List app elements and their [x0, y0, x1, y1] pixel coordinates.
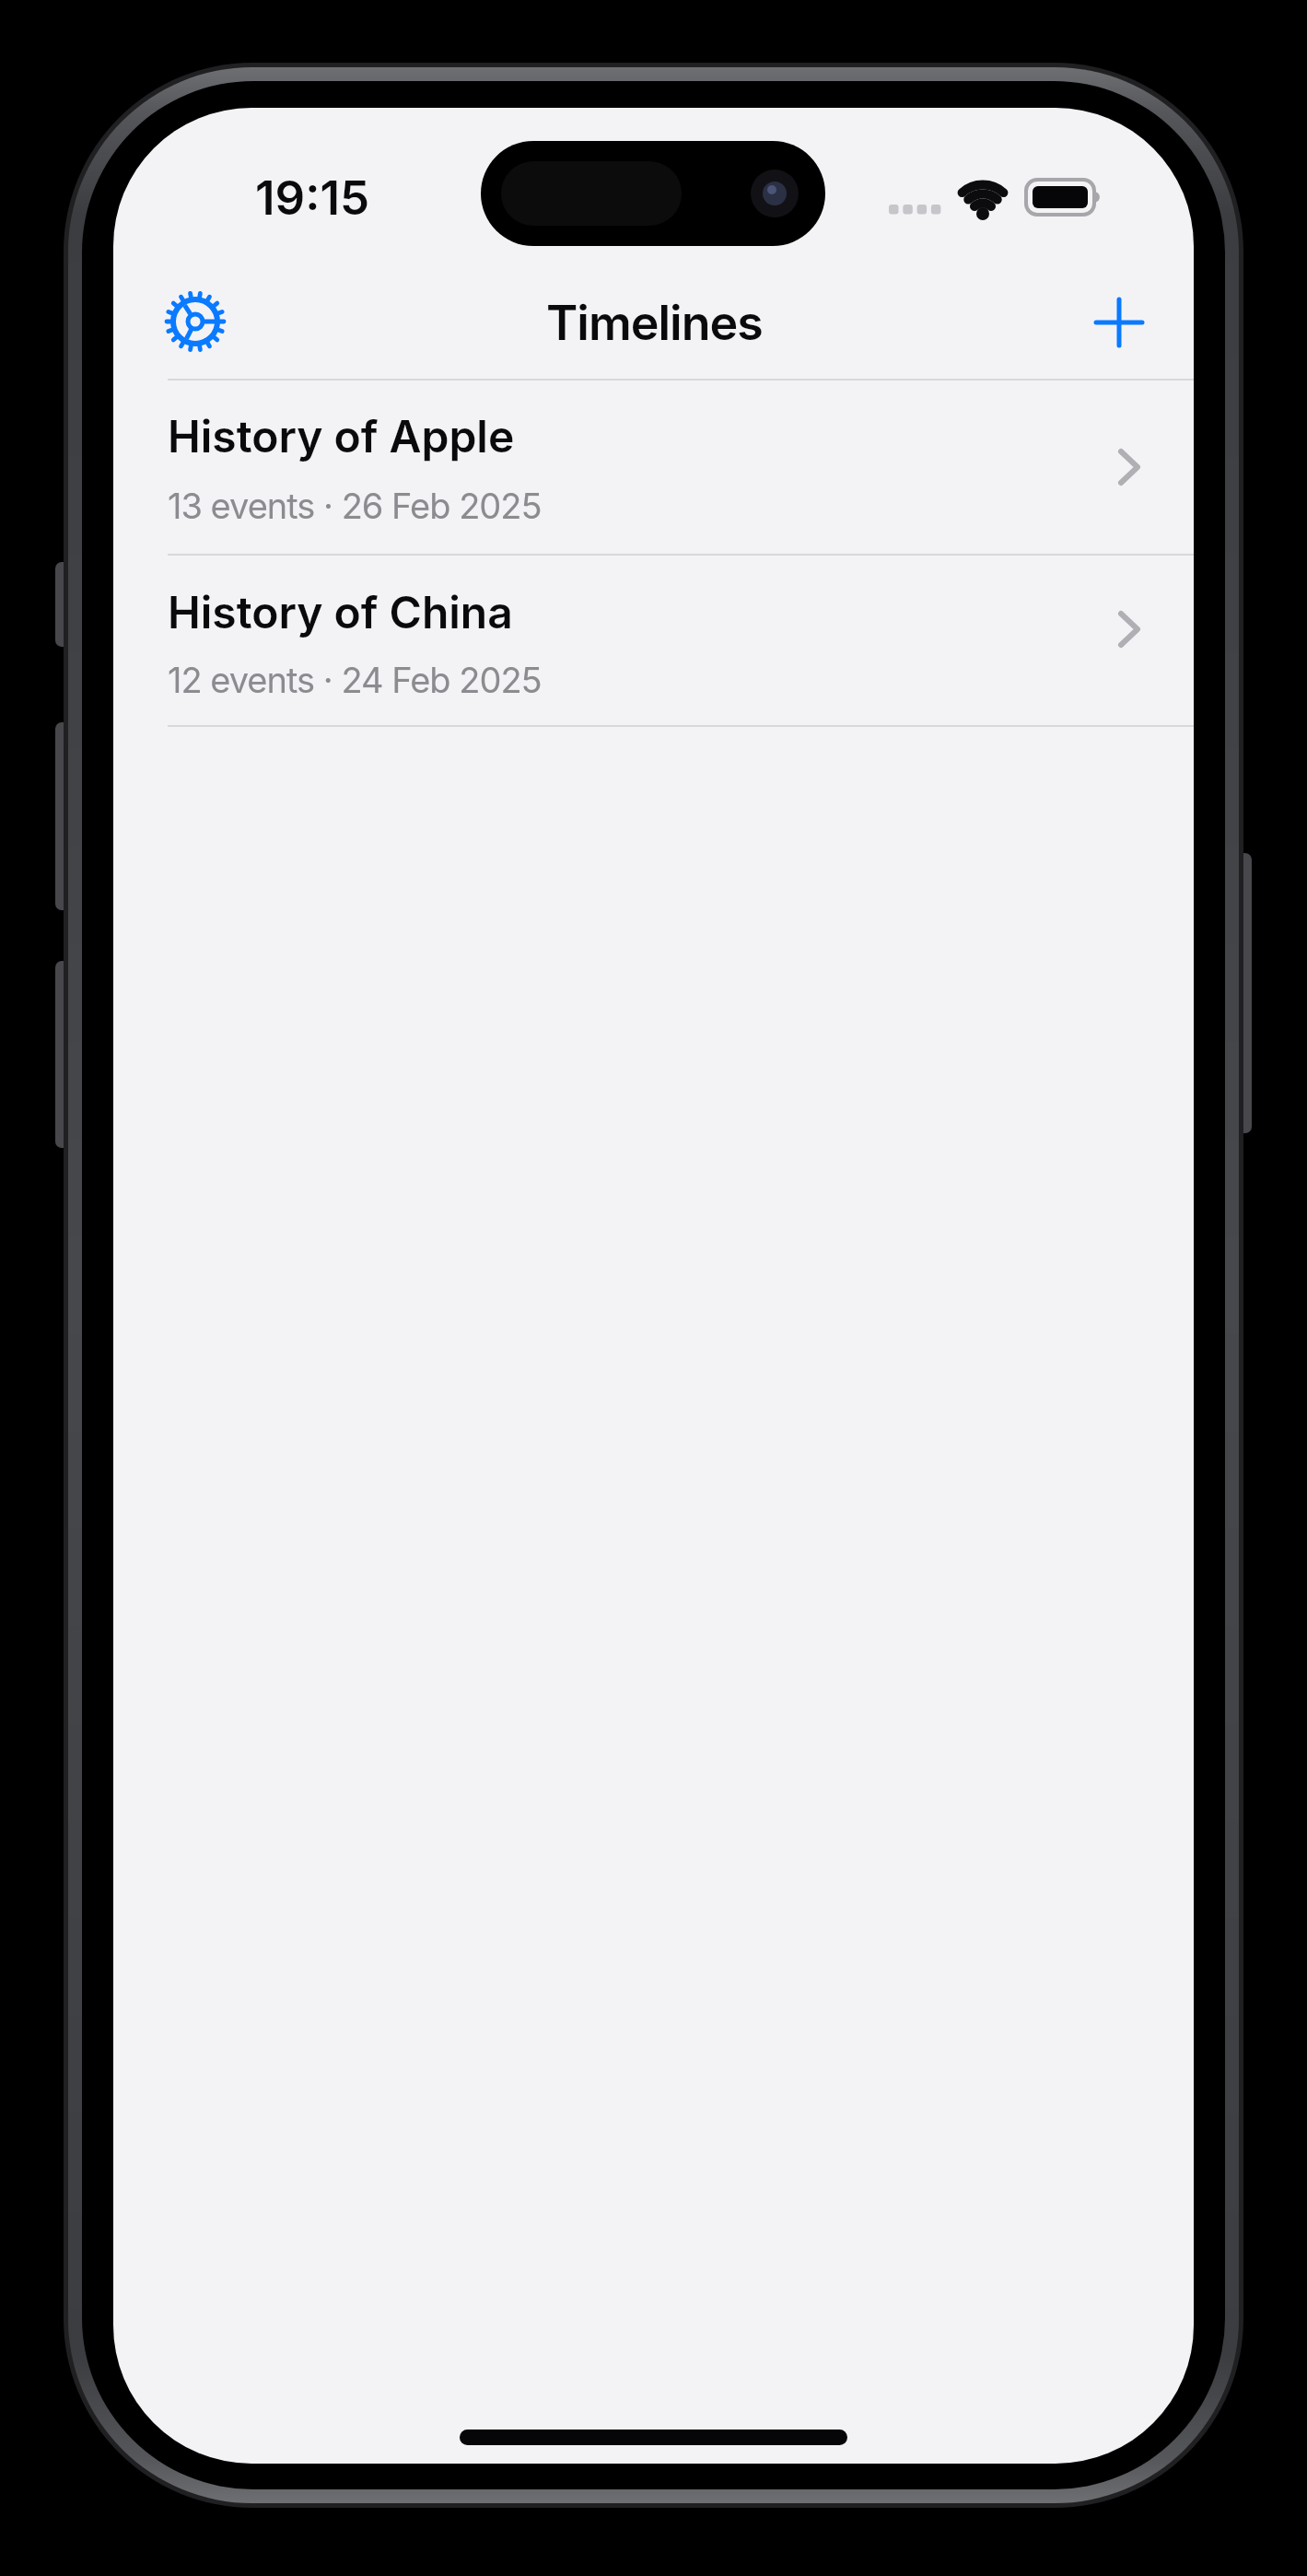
staticText: 13 events · 26 Feb 2025 [168, 485, 542, 527]
button[interactable]: History of China [113, 556, 1194, 725]
button[interactable]: History of Apple [113, 381, 1194, 554]
button[interactable] [149, 275, 241, 368]
staticText: History of Apple [168, 409, 515, 463]
staticText: Timelines [546, 294, 763, 352]
button[interactable] [1073, 276, 1165, 369]
staticText: History of China [168, 585, 513, 638]
staticText: 19:15 [255, 170, 370, 227]
staticText: 12 events · 24 Feb 2025 [168, 659, 542, 701]
